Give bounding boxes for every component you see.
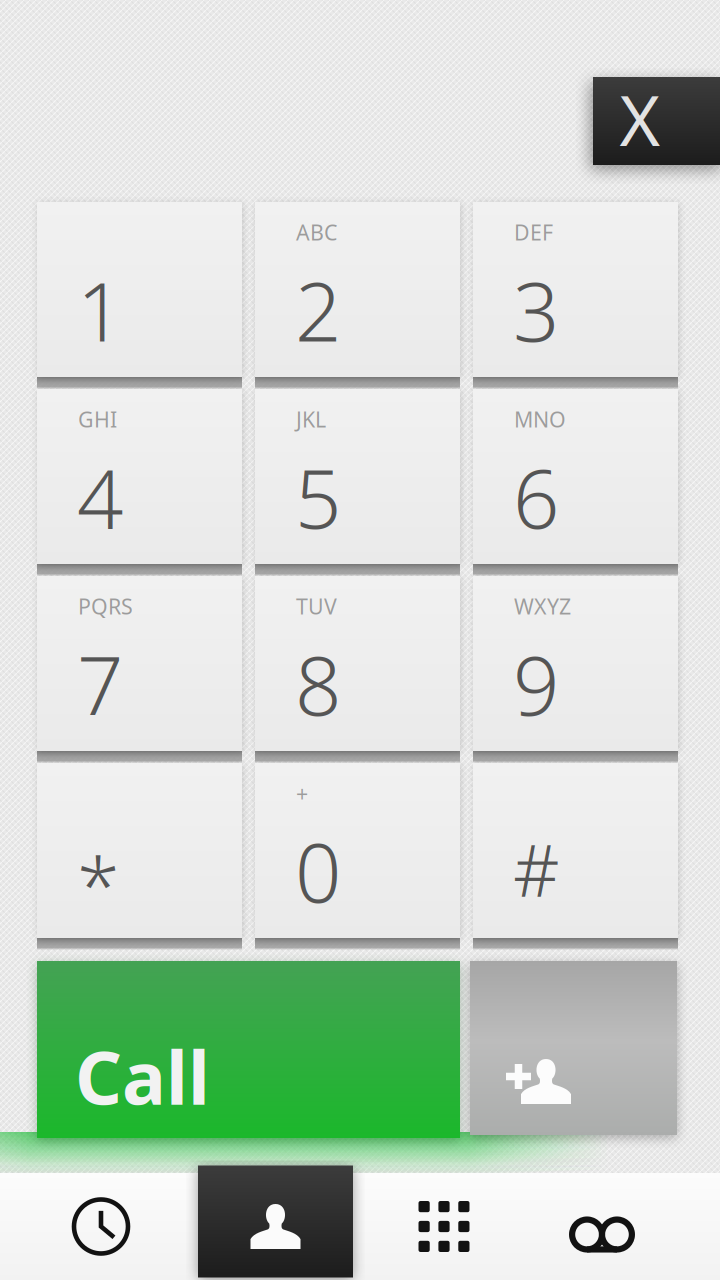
staticText: WXYZ <box>514 592 571 620</box>
staticText: 7 <box>77 630 123 738</box>
staticText: * <box>77 833 120 936</box>
staticText: JKL <box>296 405 326 433</box>
staticText: 0 <box>295 817 341 925</box>
staticText: PQRS <box>78 592 133 620</box>
button[interactable] <box>37 763 242 938</box>
staticText: 8 <box>295 630 341 738</box>
button[interactable]: WXYZ <box>473 576 678 751</box>
button[interactable]: JKL <box>255 389 460 564</box>
staticText: 2 <box>295 256 341 364</box>
staticText: 1 <box>77 256 123 364</box>
staticText: DEF <box>514 218 553 246</box>
button[interactable]: Keypad <box>354 1173 534 1280</box>
button[interactable]: Add contact <box>470 961 677 1135</box>
staticText: X <box>619 73 660 165</box>
staticText: 6 <box>513 443 559 551</box>
button[interactable]: Contacts <box>198 1173 353 1280</box>
staticText: TUV <box>296 592 337 620</box>
button[interactable]: Call <box>37 961 460 1138</box>
staticText: 9 <box>513 630 559 738</box>
button[interactable]: MNO <box>473 389 678 564</box>
button[interactable]: TUV <box>255 576 460 751</box>
staticText: + <box>296 779 308 807</box>
button[interactable]: PQRS <box>37 576 242 751</box>
staticText: ABC <box>296 218 337 246</box>
staticText: 4 <box>77 443 123 551</box>
button[interactable]: GHI <box>37 389 242 564</box>
button[interactable]: Voicemail <box>534 1173 670 1280</box>
button[interactable]: Clear <box>593 77 720 165</box>
staticText: 3 <box>513 256 559 364</box>
button[interactable]: Recents <box>2 1173 200 1280</box>
staticText: 5 <box>295 443 341 551</box>
button[interactable]: + <box>255 763 460 938</box>
staticText: MNO <box>514 405 566 433</box>
staticText: # <box>513 821 560 917</box>
button[interactable]: DEF <box>473 202 678 377</box>
button[interactable] <box>473 763 678 938</box>
staticText: GHI <box>78 405 117 433</box>
staticText: Call <box>75 1028 210 1125</box>
button[interactable] <box>37 202 242 377</box>
button[interactable]: ABC <box>255 202 460 377</box>
